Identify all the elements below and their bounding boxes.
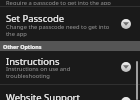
button[interactable]: More info xyxy=(121,97,131,100)
staticText: Other Options xyxy=(3,43,42,50)
button[interactable]: Instructions xyxy=(0,51,140,84)
staticText: Instructions xyxy=(6,55,60,68)
button[interactable]: More info xyxy=(121,62,131,72)
staticText: Set Passcode xyxy=(6,12,65,25)
staticText: Require a passcode to get into the app xyxy=(6,0,111,5)
button[interactable]: Set Passcode xyxy=(0,7,140,41)
button[interactable]: More info xyxy=(121,19,131,29)
staticText: Change the passcode need to get into the… xyxy=(6,23,110,37)
staticText: Website Support xyxy=(6,91,80,100)
button[interactable]: Website Support xyxy=(0,85,140,100)
staticText: Instructions on use and troubleshooting xyxy=(6,65,71,79)
